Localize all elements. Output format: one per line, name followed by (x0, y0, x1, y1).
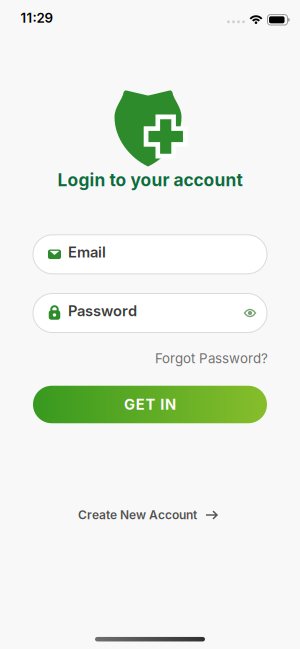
staticText: GET IN (124, 396, 176, 413)
button[interactable]: Show password (244, 308, 256, 317)
button[interactable]: GET IN (33, 386, 267, 423)
button[interactable]: Create New Account (78, 508, 218, 522)
staticText: Forgot Password? (155, 351, 268, 366)
staticText: Email (68, 243, 106, 261)
staticText: Create New Account (78, 508, 197, 522)
staticText: Password (68, 302, 137, 319)
button[interactable]: Forgot Password? (155, 351, 268, 366)
staticText: 11:29 (20, 10, 53, 26)
button[interactable]: Password (33, 293, 267, 332)
staticText: Login to your account (57, 170, 242, 190)
button[interactable]: Email (33, 235, 267, 274)
